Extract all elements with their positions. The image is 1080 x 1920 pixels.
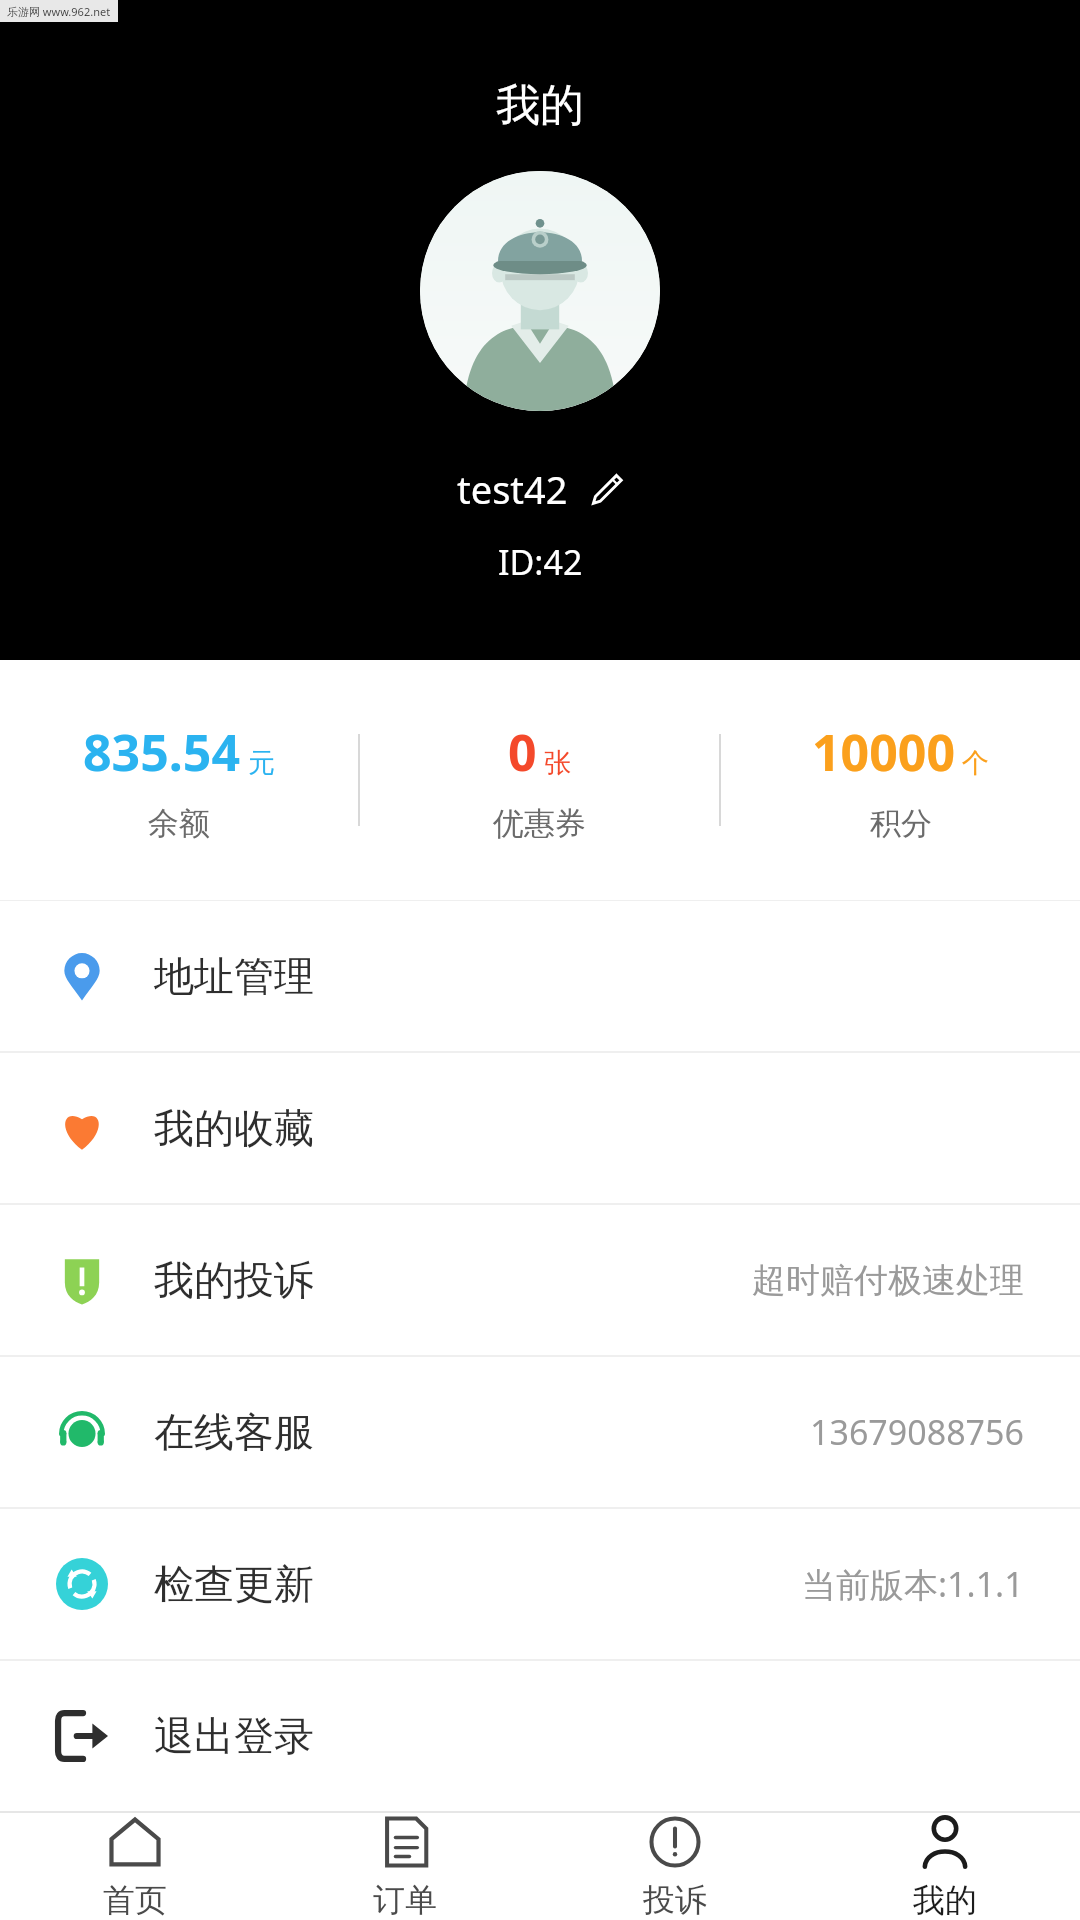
- staticText: 积分: [870, 804, 932, 843]
- other: Edit name: [590, 472, 624, 506]
- staticText: 我的投诉: [154, 1255, 314, 1305]
- staticText: 835.54: [83, 718, 241, 786]
- staticText: 我的收藏: [154, 1103, 314, 1153]
- staticText: 地址管理: [154, 951, 314, 1001]
- button[interactable]: 835.54: [0, 660, 358, 900]
- staticText: 首页: [103, 1880, 167, 1920]
- staticText: 10000: [812, 718, 955, 786]
- button[interactable]: Profile photo: [420, 171, 660, 411]
- staticText: 优惠券: [493, 804, 586, 843]
- button[interactable]: 10000: [721, 660, 1080, 900]
- button[interactable]: 地址管理: [0, 901, 1080, 1051]
- staticText: 我的: [496, 78, 584, 133]
- button[interactable]: 在线客服: [0, 1357, 1080, 1507]
- button[interactable]: 我的: [810, 1813, 1080, 1920]
- staticText: 当前版本:1.1.1: [802, 1561, 1024, 1607]
- staticText: 订单: [373, 1880, 437, 1920]
- staticText: 乐游网 www.962.net: [7, 4, 111, 19]
- staticText: 0: [508, 718, 537, 786]
- staticText: 检查更新: [154, 1559, 314, 1609]
- button[interactable]: test42: [445, 459, 636, 519]
- staticText: 个: [962, 746, 989, 780]
- staticText: 投诉: [643, 1880, 707, 1920]
- button[interactable]: 0: [360, 660, 719, 900]
- staticText: 13679088756: [810, 1409, 1024, 1455]
- staticText: 元: [248, 746, 275, 780]
- staticText: 在线客服: [154, 1407, 314, 1457]
- staticText: 退出登录: [154, 1711, 314, 1761]
- button[interactable]: 订单: [270, 1813, 540, 1920]
- staticText: 我的: [913, 1880, 977, 1920]
- staticText: 余额: [148, 804, 210, 843]
- staticText: 张: [544, 746, 571, 780]
- button[interactable]: 投诉: [540, 1813, 810, 1920]
- button[interactable]: 我的收藏: [0, 1053, 1080, 1203]
- staticText: ID:42: [498, 539, 583, 585]
- staticText: test42: [457, 463, 568, 515]
- button[interactable]: 退出登录: [0, 1661, 1080, 1811]
- button[interactable]: 检查更新: [0, 1509, 1080, 1659]
- staticText: 超时赔付极速处理: [752, 1259, 1024, 1302]
- button[interactable]: 我的投诉: [0, 1205, 1080, 1355]
- button[interactable]: 首页: [0, 1813, 270, 1920]
